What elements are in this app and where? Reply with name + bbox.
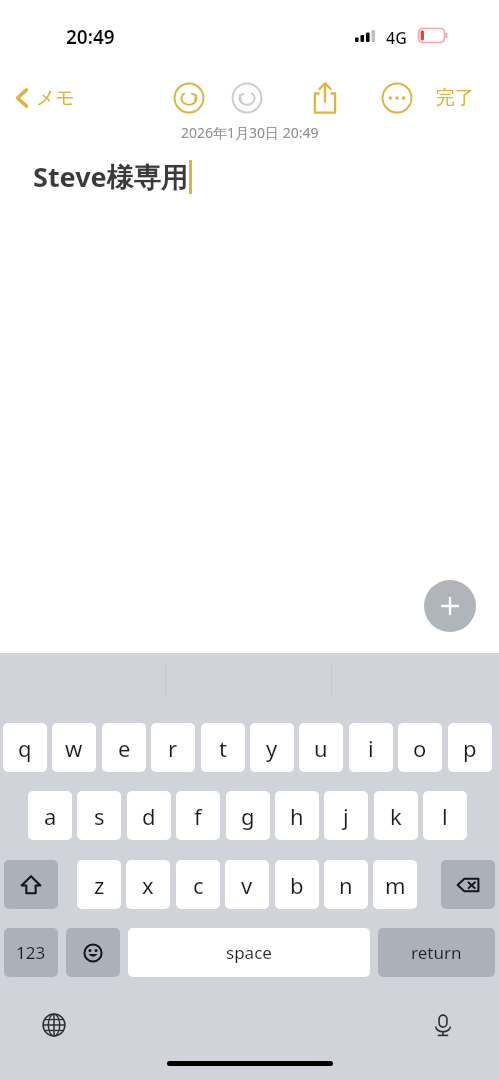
staticText: y (266, 733, 278, 763)
button[interactable]: Dictation (423, 1005, 463, 1045)
button[interactable]: 123 (4, 928, 58, 977)
button[interactable]: g (226, 791, 270, 840)
staticText: e (118, 733, 131, 763)
button[interactable]: h (275, 791, 319, 840)
staticText: 完了 (436, 86, 474, 110)
button[interactable]: t (201, 723, 245, 772)
button[interactable]: m (373, 860, 417, 909)
staticText: k (390, 801, 402, 831)
staticText: 123 (16, 941, 46, 964)
staticText: メモ (36, 86, 75, 110)
button[interactable]: l (423, 791, 467, 840)
staticText: t (219, 733, 227, 763)
staticText: n (339, 870, 353, 900)
staticText: 20:49 (66, 24, 115, 50)
staticText: u (314, 733, 328, 763)
staticText: Steve様専用 (33, 158, 188, 195)
staticText: h (290, 801, 304, 831)
button[interactable]: o (398, 723, 442, 772)
button[interactable]: Undo (170, 78, 208, 118)
staticText: r (168, 733, 178, 763)
staticText: o (413, 733, 427, 763)
staticText: i (368, 733, 374, 763)
button[interactable]: n (324, 860, 368, 909)
button[interactable]: Emoji (66, 928, 120, 977)
staticText: p (463, 733, 477, 763)
button[interactable]: Change keyboard (34, 1005, 74, 1045)
button[interactable]: v (225, 860, 269, 909)
button[interactable]: k (374, 791, 418, 840)
button[interactable]: a (28, 791, 72, 840)
button[interactable]: w (52, 723, 96, 772)
button[interactable]: b (275, 860, 319, 909)
button[interactable]: y (250, 723, 294, 772)
staticText: x (142, 870, 154, 900)
button[interactable]: c (176, 860, 220, 909)
staticText: d (142, 801, 156, 831)
button[interactable]: More (378, 78, 416, 118)
staticText: a (44, 801, 57, 831)
button[interactable]: s (77, 791, 121, 840)
staticText: 4G (386, 27, 407, 49)
staticText: m (385, 870, 406, 900)
staticText: q (18, 733, 32, 763)
button[interactable]: u (299, 723, 343, 772)
button[interactable]: p (448, 723, 492, 772)
staticText: return (411, 941, 462, 964)
button[interactable]: j (324, 791, 368, 840)
button[interactable]: f (176, 791, 220, 840)
button[interactable]: z (77, 860, 121, 909)
staticText: c (193, 870, 204, 900)
staticText: s (94, 801, 105, 831)
button[interactable]: Shift (4, 860, 58, 909)
button[interactable]: 完了 (436, 78, 474, 118)
staticText: l (442, 801, 448, 831)
staticText: j (343, 801, 349, 831)
staticText: w (65, 733, 83, 763)
button[interactable]: q (3, 723, 47, 772)
staticText: z (94, 870, 105, 900)
staticText: v (241, 870, 253, 900)
button[interactable]: r (151, 723, 195, 772)
button[interactable]: Redo (228, 78, 266, 118)
button[interactable]: Add attachment (424, 580, 476, 632)
staticText: b (290, 870, 304, 900)
button[interactable]: i (349, 723, 393, 772)
button[interactable]: Share (307, 78, 343, 118)
button[interactable]: d (127, 791, 171, 840)
staticText: 2026年1月30日 20:49 (181, 123, 319, 142)
button[interactable]: e (102, 723, 146, 772)
staticText: space (226, 941, 272, 964)
button[interactable]: space (128, 928, 370, 977)
button[interactable]: return (378, 928, 495, 977)
staticText: f (194, 801, 202, 831)
button[interactable]: Delete (441, 860, 495, 909)
button[interactable]: x (126, 860, 170, 909)
staticText: g (241, 801, 255, 831)
button[interactable]: メモ (14, 76, 75, 120)
